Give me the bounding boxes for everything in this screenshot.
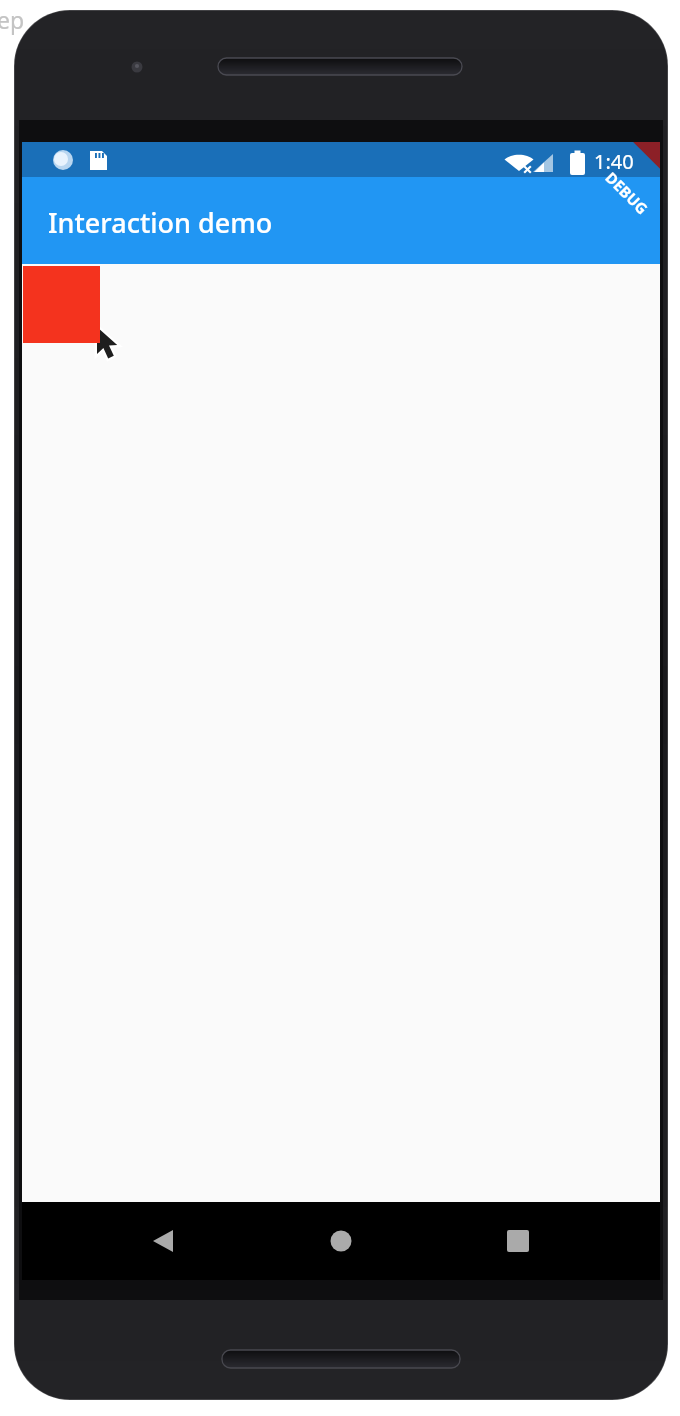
staticText: ep: [0, 4, 25, 35]
staticText: 1:40: [594, 148, 634, 175]
staticText: DEBUG: [601, 167, 652, 218]
staticText: Interaction demo: [48, 204, 273, 241]
